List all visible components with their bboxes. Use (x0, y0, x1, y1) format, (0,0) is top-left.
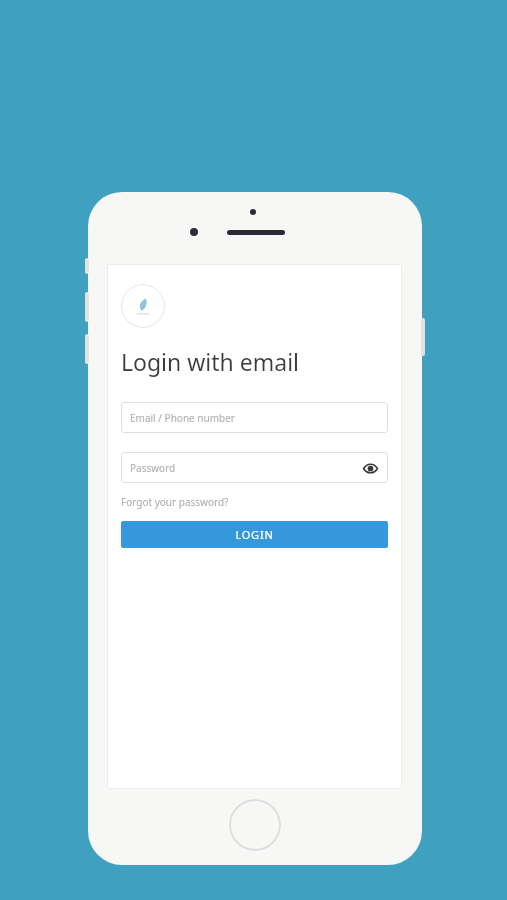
button[interactable]: Password (121, 452, 388, 483)
button[interactable]: Home (229, 799, 281, 851)
staticText: LOGIN (235, 527, 274, 542)
staticText: Email / Phone number (130, 411, 235, 425)
button[interactable]: Email / Phone number (121, 402, 388, 433)
button[interactable]: Forgot your password? (121, 495, 229, 509)
staticText: Forgot your password? (121, 495, 229, 509)
button[interactable]: LOGIN (121, 521, 388, 548)
button[interactable]: Show password (361, 459, 379, 477)
staticText: Password (130, 461, 361, 475)
staticText: Login with email (121, 346, 299, 377)
